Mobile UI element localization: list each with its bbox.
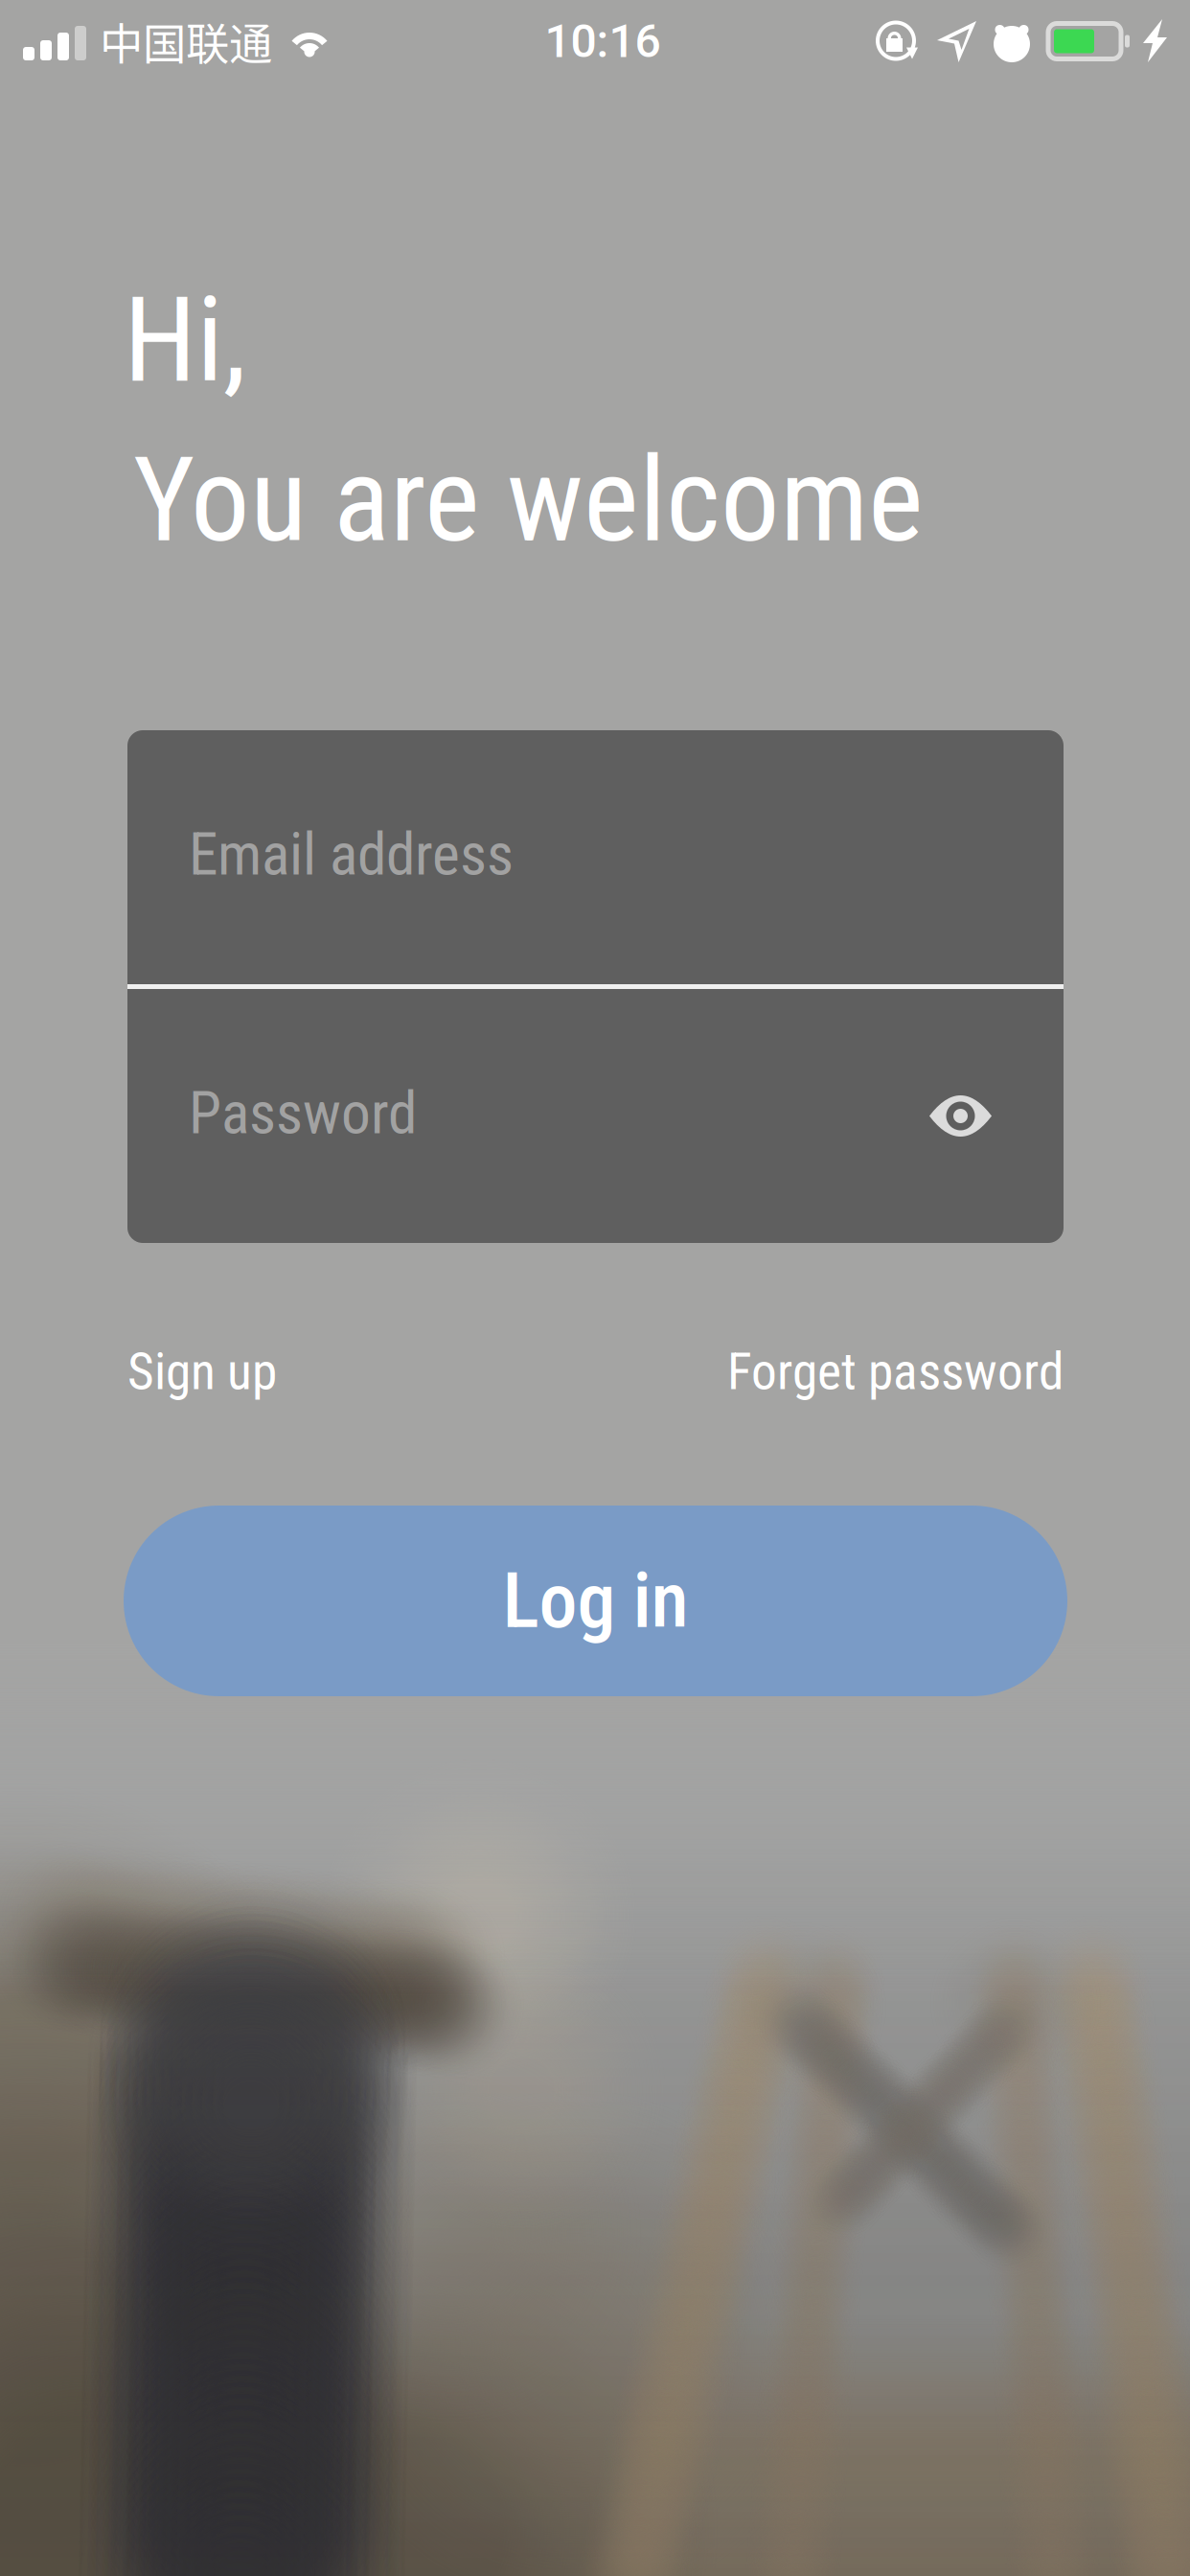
staticText: 10:16: [545, 14, 661, 68]
staticText: 中国联通: [100, 10, 272, 73]
button[interactable]: Show password: [917, 1079, 1004, 1153]
staticText: Log in: [503, 1556, 688, 1646]
button[interactable]: Sign up: [127, 1332, 277, 1411]
staticText: Forget password: [727, 1342, 1064, 1402]
staticText: Email address: [189, 820, 514, 889]
staticText: You are welcome: [133, 431, 924, 569]
staticText: Password: [189, 1079, 417, 1148]
button[interactable]: Log in: [124, 1506, 1067, 1696]
staticText: Hi,: [124, 271, 246, 409]
staticText: Sign up: [127, 1342, 277, 1402]
button[interactable]: Forget password: [727, 1332, 1064, 1411]
